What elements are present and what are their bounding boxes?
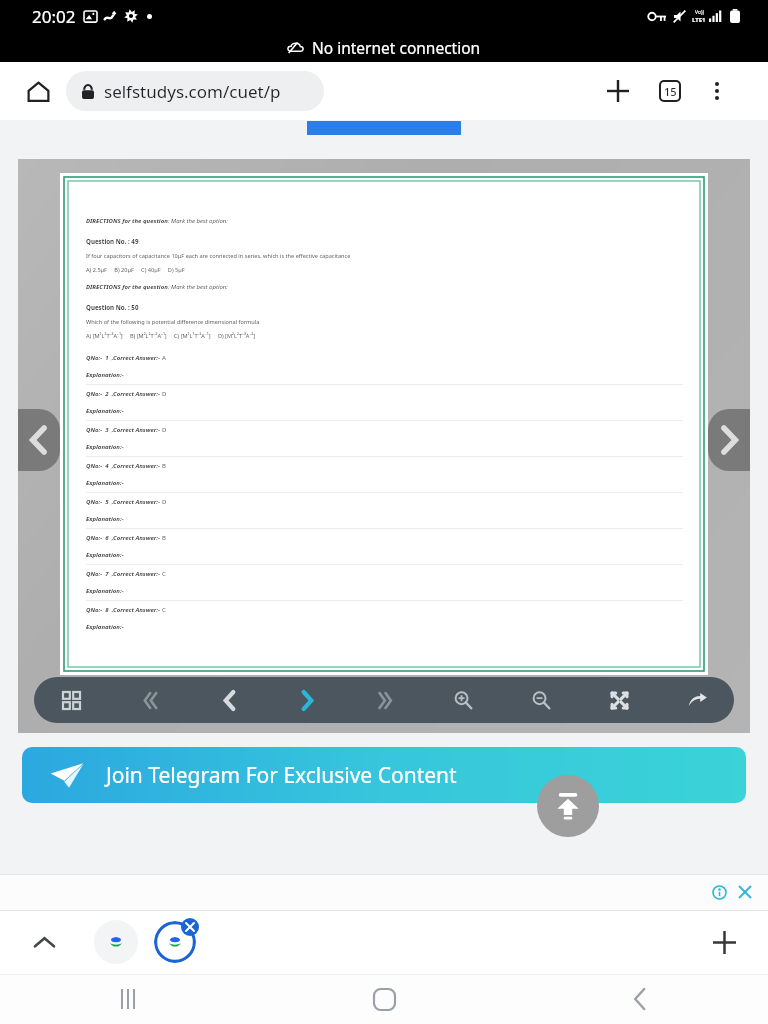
button[interactable]: Home bbox=[18, 71, 58, 111]
staticText: Explanation:- bbox=[86, 479, 124, 487]
staticText: If four capacitors of capacitance 10µF e… bbox=[86, 252, 351, 260]
button[interactable]: New tab bbox=[597, 70, 639, 112]
staticText: B bbox=[162, 462, 166, 470]
button[interactable]: Close ad bbox=[734, 881, 756, 903]
staticText: QNo:- 5 ,Correct Answer:- bbox=[86, 498, 162, 506]
staticText: Question No. : 49 bbox=[86, 237, 139, 245]
staticText: D bbox=[162, 498, 167, 506]
button[interactable]: Tab bbox=[94, 920, 138, 964]
staticText: Explanation:- bbox=[86, 623, 124, 631]
staticText: QNo:- 4 ,Correct Answer:- bbox=[86, 462, 162, 470]
staticText: QNo:- 6 ,Correct Answer:- bbox=[86, 534, 162, 542]
staticText: Explanation:- bbox=[86, 443, 124, 451]
staticText: Explanation:- bbox=[86, 587, 124, 595]
staticText: No internet connection bbox=[312, 37, 481, 58]
button[interactable]: Next page bbox=[708, 409, 750, 471]
button[interactable]: Add tab bbox=[702, 920, 746, 964]
button[interactable]: More options bbox=[697, 71, 737, 111]
button[interactable]: Ad information bbox=[708, 881, 730, 903]
staticText: C bbox=[162, 606, 166, 614]
staticText: Explanation:- bbox=[86, 407, 124, 415]
button[interactable]: Next page bbox=[292, 685, 322, 715]
button[interactable]: Collapse bbox=[22, 920, 66, 964]
staticText: D bbox=[162, 426, 167, 434]
button[interactable]: Home bbox=[256, 974, 512, 1024]
staticText: QNo:- 2 ,Correct Answer:- bbox=[86, 390, 162, 398]
staticText: : Mark the best option: bbox=[168, 217, 228, 225]
staticText: 15 bbox=[664, 84, 677, 99]
staticText: A) [M¹L²T⁻³A⁻¹] B) [M²L²T⁻²A⁻¹] C) [M¹L¹… bbox=[86, 332, 256, 340]
staticText: A bbox=[162, 354, 166, 362]
staticText: Vo)) bbox=[695, 9, 704, 16]
staticText: B bbox=[162, 534, 166, 542]
button[interactable]: selfstudys.com/cuet/p bbox=[66, 71, 324, 111]
button[interactable]: Last page bbox=[370, 685, 400, 715]
staticText: QNo:- 8 ,Correct Answer:- bbox=[86, 606, 162, 614]
button[interactable]: Previous page bbox=[18, 409, 60, 471]
staticText: Explanation:- bbox=[86, 515, 124, 523]
button[interactable]: Share bbox=[682, 685, 712, 715]
button[interactable]: Back bbox=[512, 974, 768, 1024]
button[interactable]: Join Telegram For Exclusive Content bbox=[22, 747, 746, 803]
button[interactable]: Scroll to top bbox=[537, 775, 599, 837]
button[interactable]: Fullscreen bbox=[604, 685, 634, 715]
staticText: D bbox=[162, 390, 167, 398]
staticText: : Mark the best option: bbox=[168, 283, 228, 291]
staticText: LTE1 bbox=[692, 16, 706, 24]
button[interactable]: Zoom out bbox=[526, 685, 556, 715]
button[interactable]: Tabs: 15 bbox=[649, 70, 691, 112]
button[interactable]: Previous page bbox=[214, 685, 244, 715]
button[interactable]: Thumbnails bbox=[56, 685, 86, 715]
staticText: 20:02 bbox=[32, 5, 76, 28]
staticText: QNo:- 3 ,Correct Answer:- bbox=[86, 426, 162, 434]
staticText: selfstudys.com/cuet/p bbox=[104, 80, 281, 103]
staticText: Which of the following is potential diff… bbox=[86, 318, 260, 326]
button[interactable]: Zoom in bbox=[448, 685, 478, 715]
staticText: Join Telegram For Exclusive Content bbox=[106, 761, 457, 790]
staticText: C bbox=[162, 570, 166, 578]
staticText: Explanation:- bbox=[86, 551, 124, 559]
staticText: Question No. : 50 bbox=[86, 303, 139, 311]
button[interactable]: Recent apps bbox=[0, 974, 256, 1024]
button[interactable]: First page bbox=[135, 685, 165, 715]
staticText: QNo:- 1 ,Correct Answer:- bbox=[86, 354, 162, 362]
staticText: Explanation:- bbox=[86, 371, 124, 379]
staticText: DIRECTIONS for the question bbox=[86, 283, 168, 291]
staticText: DIRECTIONS for the question bbox=[86, 217, 168, 225]
staticText: A) 2.5µF B) 20µF C) 40µF D) 5µF bbox=[86, 266, 185, 274]
button[interactable]: Current tab, close bbox=[151, 918, 199, 966]
staticText: QNo:- 7 ,Correct Answer:- bbox=[86, 570, 162, 578]
